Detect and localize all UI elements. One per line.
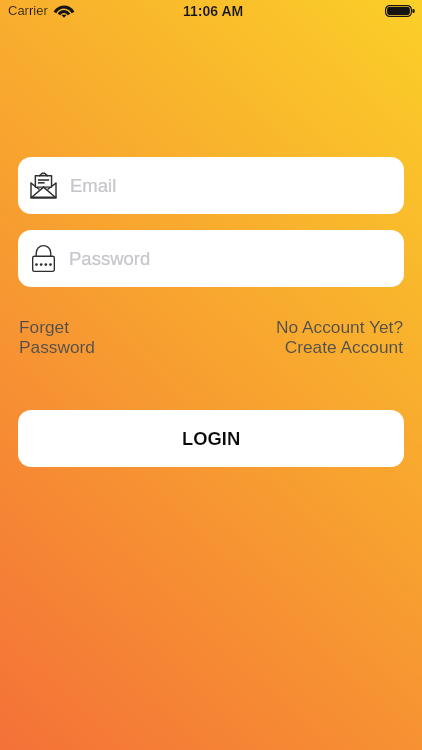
other: Password bbox=[32, 245, 55, 272]
staticText: Carrier bbox=[8, 3, 48, 18]
other: Email bbox=[31, 173, 56, 198]
staticText: Forget Password bbox=[19, 317, 95, 357]
button[interactable]: Email bbox=[18, 157, 404, 214]
button[interactable]: Password bbox=[18, 230, 404, 287]
staticText: LOGIN bbox=[182, 428, 241, 449]
staticText: No Account Yet? Create Account bbox=[276, 317, 403, 357]
button[interactable]: Forget Password bbox=[19, 317, 95, 357]
other: Battery bbox=[385, 5, 415, 17]
staticText: Password bbox=[69, 248, 151, 269]
button[interactable]: No Account Yet? Create Account bbox=[276, 317, 403, 357]
staticText: 11:06 AM bbox=[183, 3, 244, 19]
button[interactable]: LOGIN bbox=[18, 410, 404, 467]
other: Wifi signal bbox=[56, 5, 72, 17]
staticText: Email bbox=[70, 175, 117, 196]
